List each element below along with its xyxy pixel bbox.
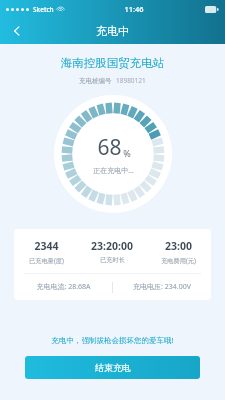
staticText: 已充电量(度) <box>29 256 64 264</box>
button[interactable]: 23:20:00 <box>79 239 145 264</box>
staticText: % <box>123 147 131 159</box>
staticText: 充电费用(元) <box>161 256 196 264</box>
staticText: 23:20:00 <box>91 239 133 253</box>
staticText: 18980121 <box>116 76 146 85</box>
button[interactable]: 结束充电 <box>25 356 200 379</box>
staticText: 充电电流: 28.68A <box>36 282 91 292</box>
staticText: 68 <box>97 133 122 162</box>
staticText: Sketch <box>33 5 54 14</box>
staticText: 已充时长 <box>100 256 125 264</box>
staticText: 充电桩编号 <box>79 77 112 85</box>
staticText: 23:00 <box>165 239 192 253</box>
button[interactable]: 23:00 <box>145 239 211 264</box>
staticText: 充电中 <box>96 24 129 38</box>
button[interactable]: 2344 <box>14 239 79 264</box>
staticText: 2344 <box>34 239 59 253</box>
staticText: 结束充电 <box>95 362 131 373</box>
staticText: 充电中，强制拔枪会损坏您的爱车哦! <box>0 335 225 345</box>
staticText: 正在充电中... <box>93 166 134 176</box>
staticText: 11:46 <box>124 4 144 14</box>
staticText: 充电电压: 234.00V <box>133 282 191 292</box>
staticText: 海南控股国贸充电站 <box>0 56 225 70</box>
button[interactable]: Back <box>4 18 30 44</box>
